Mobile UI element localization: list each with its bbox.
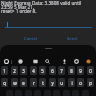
staticText: t <box>42 80 44 86</box>
button[interactable]: 6 <box>49 66 56 75</box>
staticText: 0 <box>89 68 92 74</box>
button[interactable]: t <box>39 78 46 87</box>
button[interactable]: 1 <box>1 66 8 75</box>
button[interactable]: Search <box>44 58 51 65</box>
button[interactable]: 5 <box>39 66 46 75</box>
button[interactable]: Send <box>64 33 80 45</box>
staticText: 1 <box>3 68 6 74</box>
staticText: 3 <box>22 68 25 74</box>
button[interactable]: Emoji <box>17 58 24 65</box>
button[interactable]: Google <box>3 58 10 65</box>
staticText: q <box>3 80 6 86</box>
staticText: p <box>89 80 92 86</box>
button[interactable]: 7 <box>58 66 65 75</box>
staticText: i <box>71 80 73 86</box>
button[interactable]: y <box>49 78 56 87</box>
staticText: y <box>51 80 54 86</box>
staticText: w <box>13 80 17 86</box>
button[interactable]: e <box>20 78 27 87</box>
staticText: o <box>79 80 82 86</box>
button[interactable]: Cancel <box>21 33 41 45</box>
button[interactable]: w <box>11 78 18 87</box>
button[interactable]: 8 <box>68 66 75 75</box>
staticText: 2 <box>13 68 16 74</box>
button[interactable]: q <box>1 78 8 87</box>
button[interactable]: 3 <box>20 66 27 75</box>
staticText: Cancel <box>24 36 38 42</box>
button[interactable]: o <box>77 78 84 87</box>
staticText: u <box>60 80 63 86</box>
button[interactable]: Translate <box>85 58 92 65</box>
staticText: 5 <box>41 68 44 74</box>
button[interactable]: GIF <box>32 58 39 65</box>
button[interactable]: r <box>30 78 37 87</box>
staticText: Send <box>67 36 77 42</box>
staticText: 4 <box>32 68 35 74</box>
button[interactable]: Settings <box>73 58 80 65</box>
staticText: Night Express Data: 3.3808 valid until 2… <box>1 0 82 15</box>
button[interactable]: u <box>58 78 65 87</box>
button[interactable]: 0 <box>87 66 94 75</box>
button[interactable]: 2 <box>11 66 18 75</box>
staticText: 8 <box>70 68 73 74</box>
button[interactable]: 4 <box>30 66 37 75</box>
staticText: e <box>22 80 25 86</box>
button[interactable]: i <box>68 78 75 87</box>
staticText: 7 <box>60 68 63 74</box>
button[interactable]: 9 <box>77 66 84 75</box>
staticText: 9 <box>79 68 82 74</box>
staticText: 6 <box>51 68 54 74</box>
button[interactable]: Voice input <box>61 58 68 65</box>
button[interactable]: p <box>87 78 94 87</box>
staticText: r <box>33 80 35 86</box>
